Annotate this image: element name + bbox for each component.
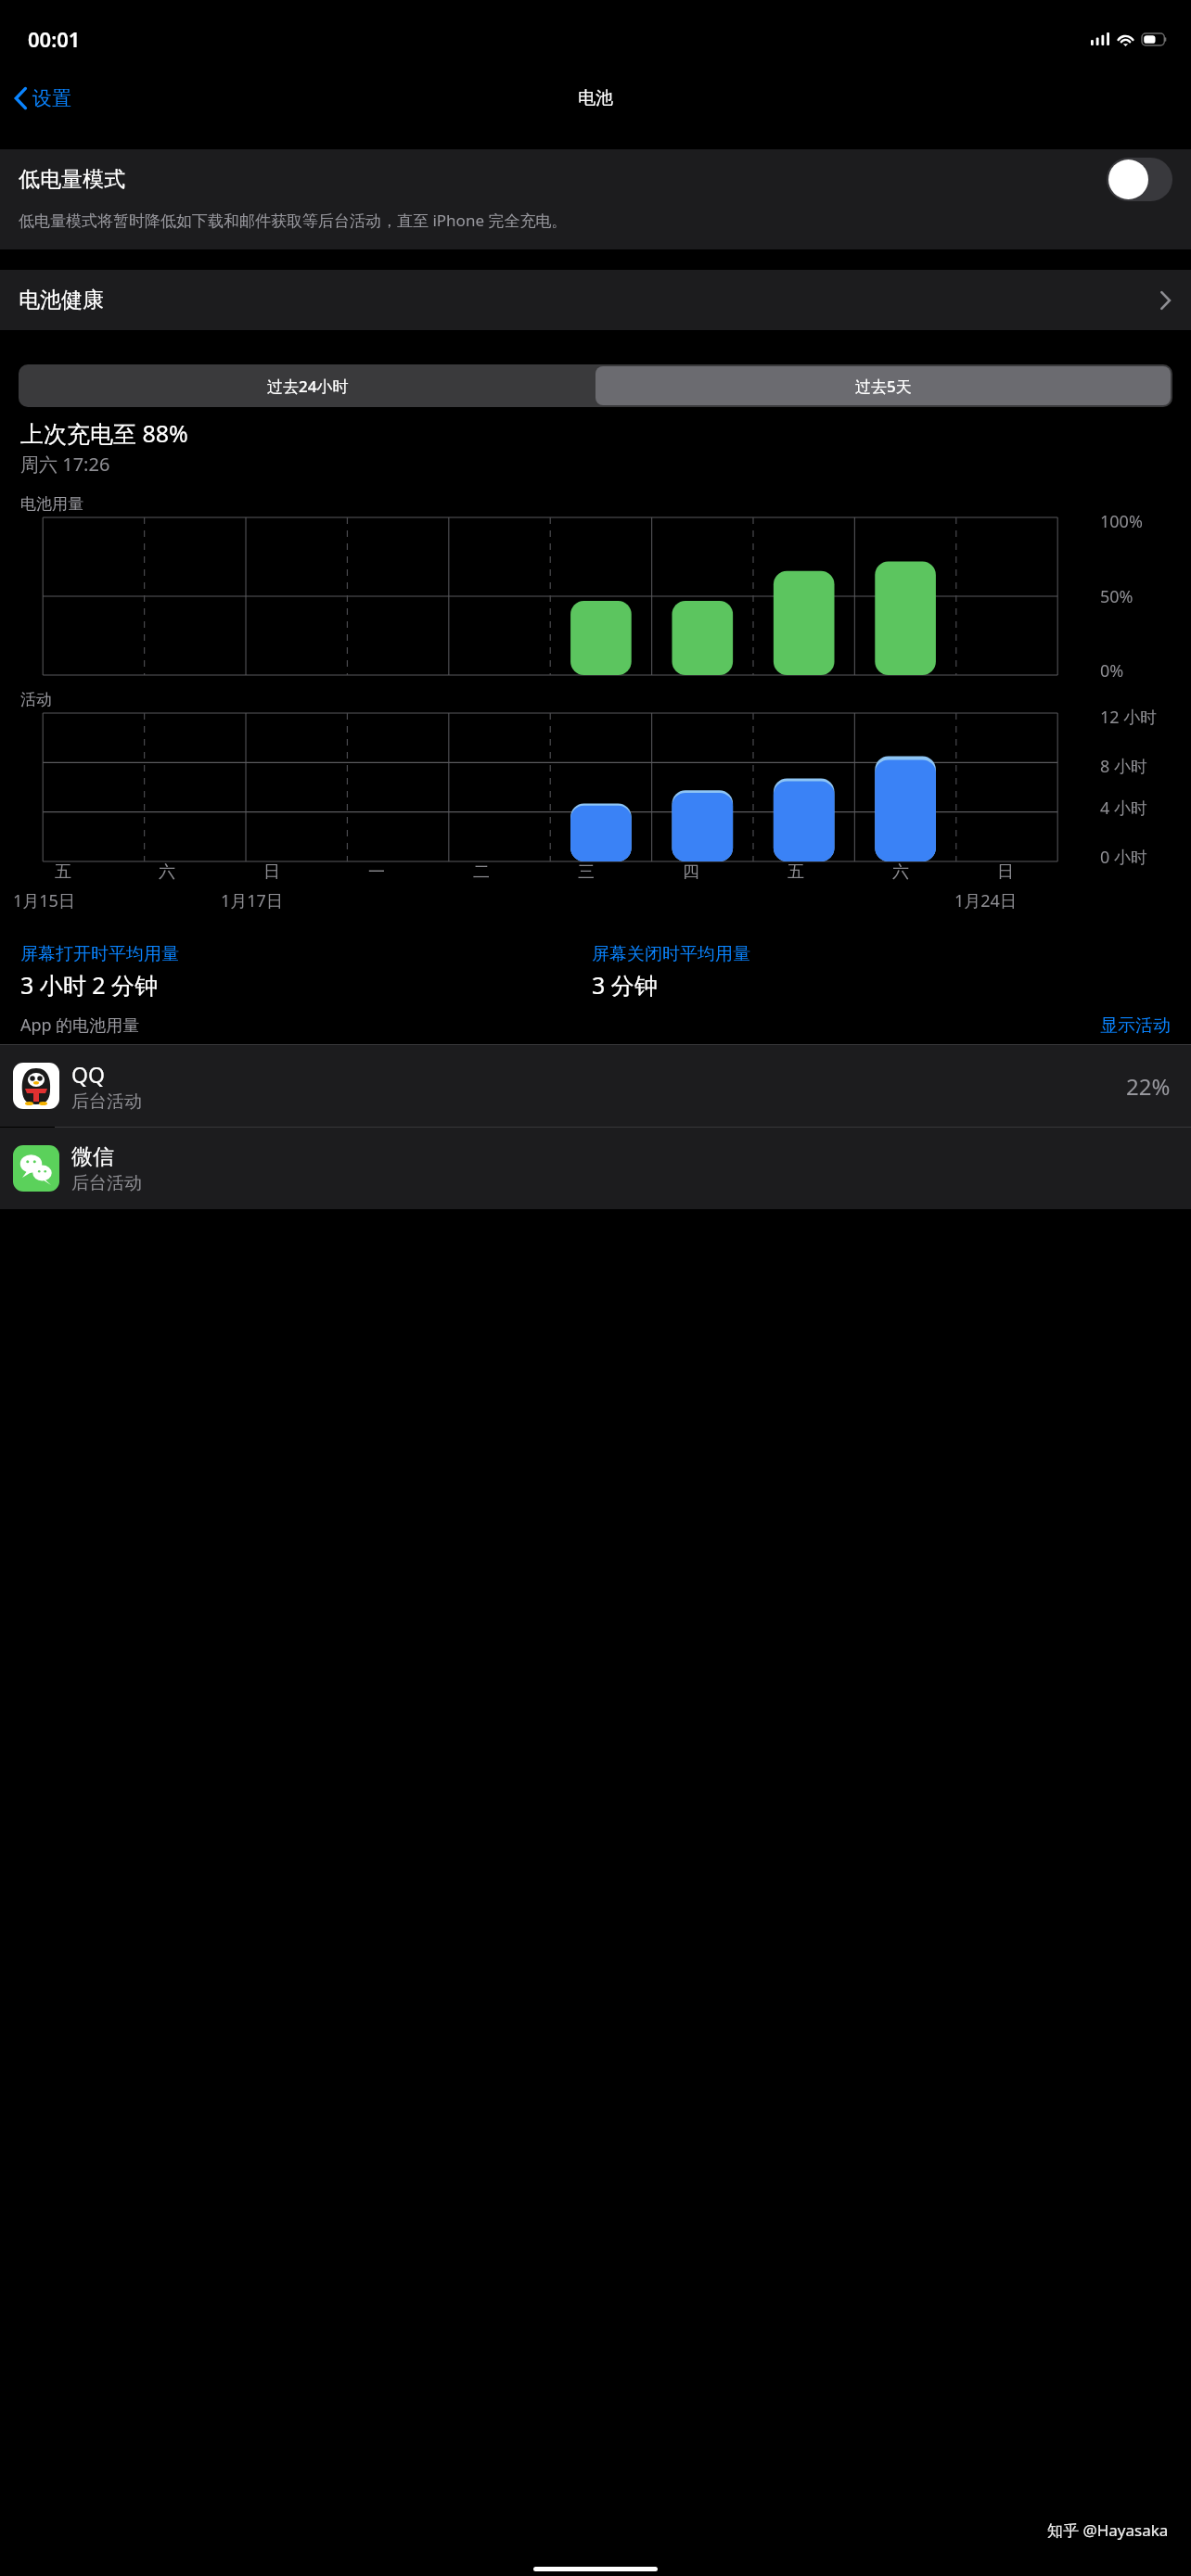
staticText: 3 小时 2 分钟 <box>20 969 159 1001</box>
staticText: 4 小时 <box>1100 797 1147 820</box>
staticText: 屏幕关闭时平均用量 <box>592 943 750 965</box>
staticText: 8 小时 <box>1100 755 1147 778</box>
staticText: 1月15日 <box>13 889 75 912</box>
staticText: 低电量模式将暂时降低如下载和邮件获取等后台活动，直至 iPhone 完全充电。 <box>19 210 568 231</box>
button[interactable]: 显示活动 <box>1100 1014 1171 1037</box>
button[interactable]: 过去24小时 <box>20 366 595 405</box>
staticText: 上次充电至 88% <box>20 417 188 449</box>
staticText: 00:01 <box>28 25 81 53</box>
staticText: 0 小时 <box>1100 846 1147 869</box>
staticText: 后台活动 <box>71 1172 142 1194</box>
staticText: 0% <box>1100 659 1124 682</box>
staticText: 三 <box>578 861 595 883</box>
staticText: 设置 <box>32 86 71 110</box>
staticText: 12 小时 <box>1100 706 1158 729</box>
staticText: 后台活动 <box>71 1090 142 1113</box>
button[interactable]: 低电量模式 <box>0 149 1191 210</box>
staticText: 日 <box>997 861 1014 883</box>
staticText: 低电量模式 <box>19 166 125 193</box>
button[interactable]: 微信 <box>0 1128 1191 1209</box>
staticText: 电池用量 <box>20 494 83 514</box>
button[interactable]: 过去5天 <box>595 366 1171 405</box>
staticText: 日 <box>263 861 280 883</box>
staticText: 一 <box>368 861 385 883</box>
staticText: 100% <box>1100 510 1143 533</box>
button[interactable]: 屏幕打开时平均用量 <box>20 943 592 1001</box>
staticText: 五 <box>788 861 804 883</box>
staticText: 活动 <box>20 690 52 709</box>
staticText: 过去24小时 <box>267 376 349 397</box>
button[interactable]: 电池健康 <box>0 270 1191 330</box>
staticText: 电池健康 <box>19 287 104 313</box>
staticText: 知乎 @Hayasaka <box>1047 2519 1169 2541</box>
staticText: 显示活动 <box>1100 1014 1171 1037</box>
staticText: 电池 <box>578 87 613 109</box>
staticText: 四 <box>683 861 699 883</box>
staticText: 六 <box>892 861 909 883</box>
staticText: 屏幕打开时平均用量 <box>20 943 179 965</box>
button[interactable]: 设置 <box>0 81 83 116</box>
staticText: 3 分钟 <box>592 969 658 1001</box>
staticText: QQ <box>71 1060 105 1089</box>
staticText: 周六 17:26 <box>20 452 110 477</box>
staticText: 1月24日 <box>954 889 1017 912</box>
staticText: 五 <box>55 861 71 883</box>
staticText: 22% <box>1126 1071 1171 1102</box>
staticText: App 的电池用量 <box>20 1014 140 1037</box>
staticText: 微信 <box>71 1143 114 1170</box>
button[interactable]: 屏幕关闭时平均用量 <box>592 943 1191 1001</box>
staticText: 50% <box>1100 585 1133 608</box>
staticText: 过去5天 <box>855 376 912 397</box>
button[interactable]: Low Power Mode toggle <box>1107 158 1172 201</box>
staticText: 二 <box>473 861 490 883</box>
staticText: 六 <box>159 861 175 883</box>
staticText: 1月17日 <box>221 889 283 912</box>
button[interactable]: QQ <box>0 1045 1191 1127</box>
